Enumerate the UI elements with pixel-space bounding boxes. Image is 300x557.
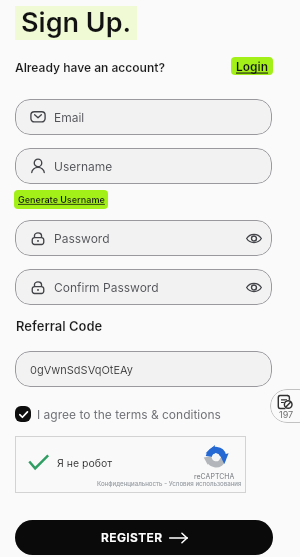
- button[interactable]: REGISTER: [15, 520, 273, 555]
- staticText: Password: [54, 231, 110, 246]
- staticText: REGISTER: [101, 530, 163, 545]
- staticText: I agree to the terms & conditions: [37, 407, 221, 422]
- staticText: Username: [54, 159, 113, 174]
- staticText: Конфиденциальность - Условия использован…: [97, 480, 242, 488]
- button[interactable]: Login: [231, 57, 273, 75]
- button[interactable]: Screen recorder badge: [270, 389, 300, 423]
- button[interactable]: Email: [15, 99, 272, 135]
- button[interactable]: Show password: [246, 281, 262, 294]
- staticText: Email: [54, 110, 85, 125]
- staticText: Я не робот: [57, 457, 113, 470]
- staticText: 197: [279, 409, 294, 420]
- staticText: Sign Up.: [21, 6, 132, 39]
- button[interactable]: Confirm Password: [15, 269, 272, 305]
- staticText: Generate Username: [18, 194, 105, 205]
- button[interactable]: Generate Username: [14, 190, 108, 209]
- staticText: Login: [236, 59, 269, 74]
- button[interactable]: Username: [15, 148, 272, 184]
- staticText: reCAPTCHA: [194, 472, 235, 480]
- button[interactable]: Show password: [246, 232, 262, 245]
- staticText: Already have an account?: [15, 60, 166, 75]
- staticText: 0gVwnSdSVqOtEAy: [30, 363, 134, 376]
- button[interactable]: 0gVwnSdSVqOtEAy: [15, 351, 272, 387]
- staticText: Confirm Password: [54, 280, 159, 295]
- button[interactable]: Password: [15, 220, 272, 256]
- button[interactable]: I agree to the terms & conditions: [15, 406, 221, 422]
- staticText: Referral Code: [16, 318, 103, 334]
